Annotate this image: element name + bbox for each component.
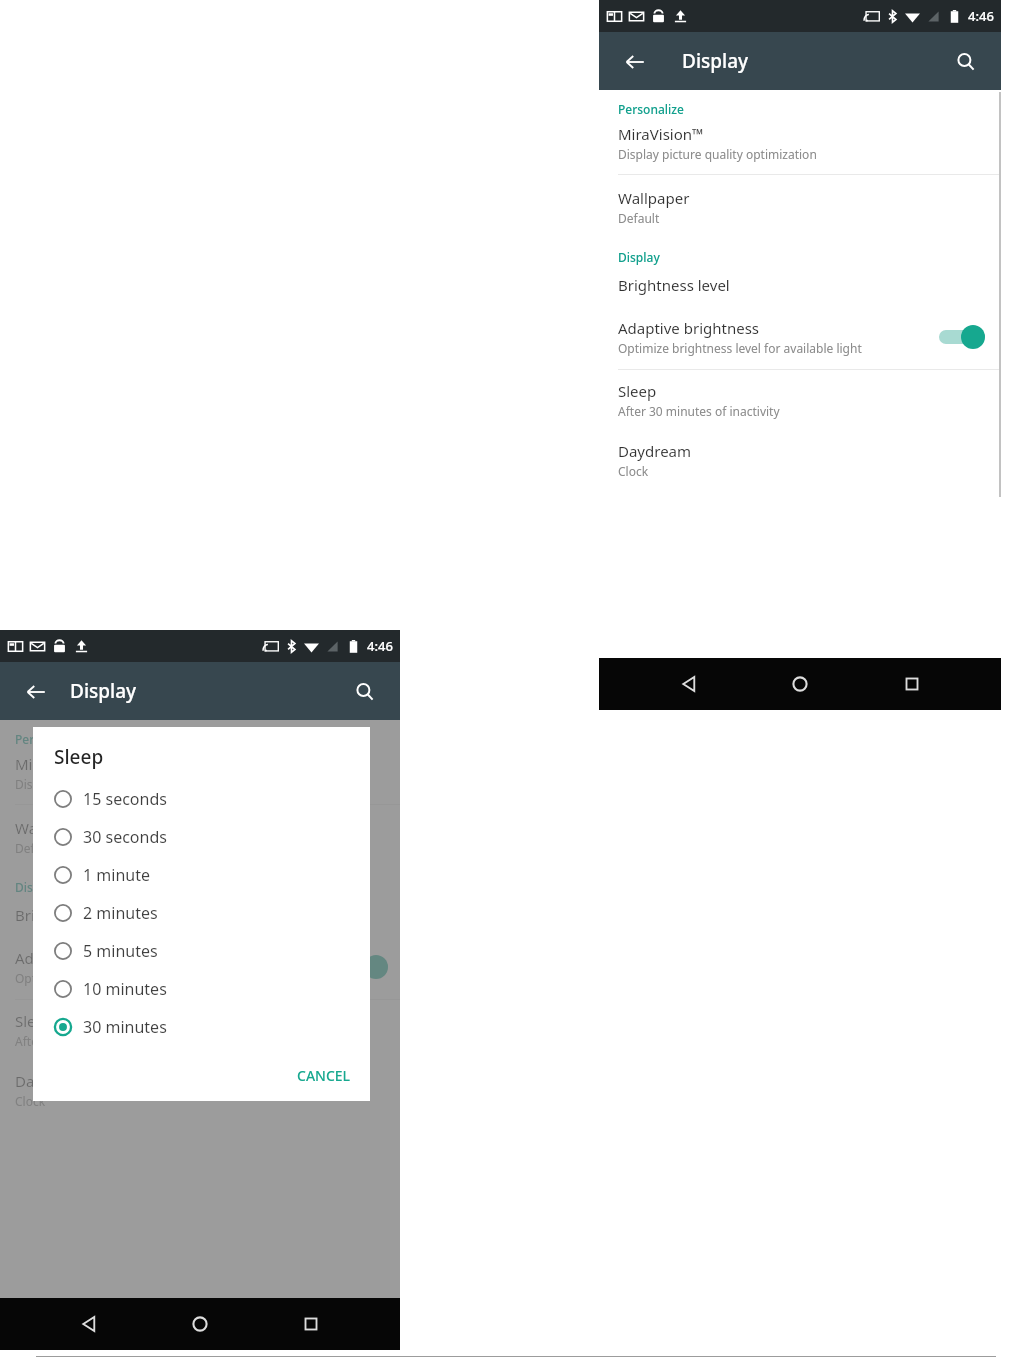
staticText: Display <box>15 879 57 895</box>
button[interactable]: Wallpaper <box>599 175 1001 241</box>
staticText: Personalize <box>618 101 684 117</box>
button[interactable]: Search <box>347 674 382 709</box>
staticText: Adaptive brightness <box>15 948 157 968</box>
button[interactable]: Home <box>178 1302 222 1346</box>
button[interactable]: CANCEL <box>278 1058 370 1093</box>
staticText: CANCEL <box>297 1066 351 1085</box>
staticText: Sleep <box>15 1011 54 1031</box>
staticText: 10 minutes <box>83 978 167 1000</box>
staticText: Wallpaper <box>15 818 87 838</box>
button[interactable]: 10 minutes <box>33 970 370 1008</box>
staticText: Brightness level <box>618 275 730 295</box>
staticText: Display picture quality optimization <box>15 776 214 792</box>
staticText: 15 seconds <box>83 788 167 810</box>
staticText: Clock <box>618 463 649 479</box>
staticText: Default <box>618 210 660 226</box>
button[interactable]: Daydream <box>0 1062 400 1119</box>
staticText: Clock <box>15 1093 46 1109</box>
button[interactable]: 1 minute <box>33 856 370 894</box>
button[interactable]: Adaptive brightness <box>0 940 400 999</box>
staticText: 4:46 <box>968 7 994 25</box>
button[interactable]: Adaptive brightness toggle <box>939 325 985 349</box>
button[interactable]: Wallpaper <box>0 805 400 871</box>
button[interactable]: Back <box>667 662 711 706</box>
staticText: 30 seconds <box>83 826 167 848</box>
staticText: Display <box>682 48 749 74</box>
button[interactable]: Recents <box>289 1302 333 1346</box>
staticText: 1 minute <box>83 864 150 886</box>
staticText: After 30 minutes of inactivity <box>618 403 780 419</box>
button[interactable]: Brightness level <box>599 270 1001 310</box>
button[interactable]: Home <box>778 662 822 706</box>
staticText: Wallpaper <box>618 188 690 208</box>
button[interactable]: Search <box>948 44 983 79</box>
staticText: Optimize brightness level for available … <box>15 970 259 986</box>
staticText: 30 minutes <box>83 1016 167 1038</box>
button[interactable]: Recents <box>890 662 934 706</box>
staticText: 2 minutes <box>83 902 158 924</box>
staticText: Sleep <box>54 744 104 770</box>
button[interactable]: Adaptive brightness toggle <box>342 955 388 979</box>
button[interactable]: Back <box>617 44 652 79</box>
button[interactable]: Back <box>67 1302 111 1346</box>
button[interactable]: 2 minutes <box>33 894 370 932</box>
staticText: Optimize brightness level for available … <box>618 340 862 356</box>
staticText: Personalize <box>15 731 81 747</box>
button[interactable]: Sleep <box>599 370 1001 432</box>
button[interactable]: 5 minutes <box>33 932 370 970</box>
staticText: Default <box>15 840 57 856</box>
button[interactable]: 30 seconds <box>33 818 370 856</box>
staticText: MiraVision™ <box>15 754 101 774</box>
staticText: Daydream <box>15 1071 89 1091</box>
staticText: 4:46 <box>367 637 393 655</box>
button[interactable]: Back <box>18 674 53 709</box>
staticText: Brightness level <box>15 905 127 925</box>
button[interactable]: MiraVision™ <box>0 752 400 804</box>
staticText: Display <box>70 678 137 704</box>
staticText: MiraVision™ <box>618 124 704 144</box>
button[interactable]: 15 seconds <box>33 780 370 818</box>
staticText: After 30 minutes of inactivity <box>15 1033 177 1049</box>
staticText: Adaptive brightness <box>618 318 760 338</box>
staticText: 5 minutes <box>83 940 158 962</box>
staticText: Daydream <box>618 441 692 461</box>
staticText: Display picture quality optimization <box>618 146 817 162</box>
button[interactable]: 30 minutes <box>33 1008 370 1046</box>
button[interactable]: Brightness level <box>0 900 400 940</box>
button[interactable]: Adaptive brightness <box>599 310 1001 369</box>
button[interactable]: MiraVision™ <box>599 122 1001 174</box>
staticText: Sleep <box>618 381 657 401</box>
staticText: Display <box>618 249 660 265</box>
button[interactable]: Daydream <box>599 432 1001 489</box>
button[interactable]: Sleep <box>0 1000 400 1062</box>
